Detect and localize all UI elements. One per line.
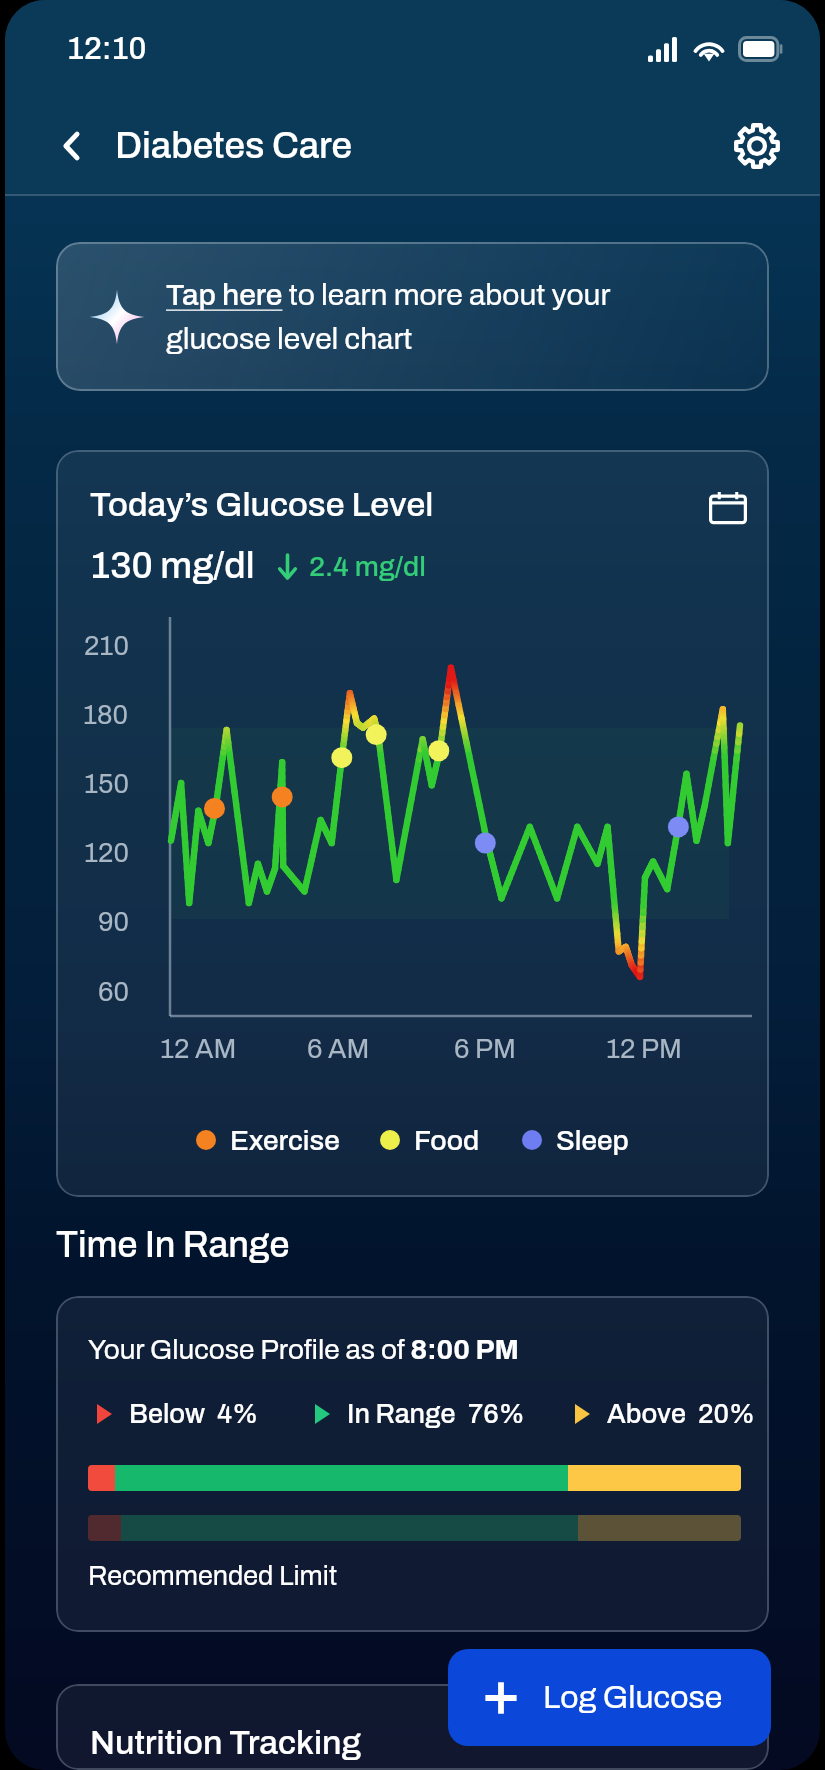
button[interactable]: Log Glucose [448, 1649, 771, 1746]
staticText: 120 [84, 838, 129, 867]
staticText: 90 [98, 907, 129, 936]
staticText: 150 [84, 769, 129, 798]
staticText: 76% [468, 1399, 525, 1428]
staticText: 6 PM [454, 1034, 516, 1063]
staticText: Log Glucose [543, 1680, 723, 1715]
staticText: 2.4 mg/dl [309, 551, 426, 581]
staticText: 20% [698, 1399, 755, 1428]
staticText: 12:10 [67, 32, 147, 66]
staticText: 4% [217, 1399, 259, 1428]
button[interactable]: Back [45, 119, 99, 173]
staticText: Below [129, 1399, 205, 1428]
staticText: Recommended Limit [88, 1561, 337, 1590]
staticText: In Range [347, 1399, 456, 1428]
staticText: 130 mg/dl [90, 546, 255, 586]
staticText: Nutrition Tracking [90, 1724, 362, 1761]
staticText: 12 AM [160, 1034, 237, 1063]
button[interactable]: Settings [728, 117, 786, 175]
staticText: Diabetes Care [115, 126, 352, 166]
staticText: 180 [83, 700, 129, 729]
staticText: 6 AM [307, 1034, 370, 1063]
staticText: 12 PM [606, 1034, 682, 1063]
staticText: Sleep [556, 1125, 629, 1155]
staticText: Above [607, 1399, 686, 1428]
staticText: Today’s Glucose Level [90, 486, 434, 523]
staticText: Time In Range [56, 1225, 290, 1264]
button[interactable]: Pick date [705, 486, 751, 532]
staticText: 60 [98, 977, 129, 1006]
staticText: Tap here to learn more about your glucos… [166, 279, 678, 355]
staticText: Your Glucose Profile as of 8:00 PM [88, 1334, 519, 1364]
button[interactable]: Tap here to learn more about your glucos… [56, 242, 769, 391]
staticText: Exercise [230, 1125, 340, 1155]
staticText: 210 [84, 631, 129, 660]
staticText: Food [414, 1125, 480, 1155]
